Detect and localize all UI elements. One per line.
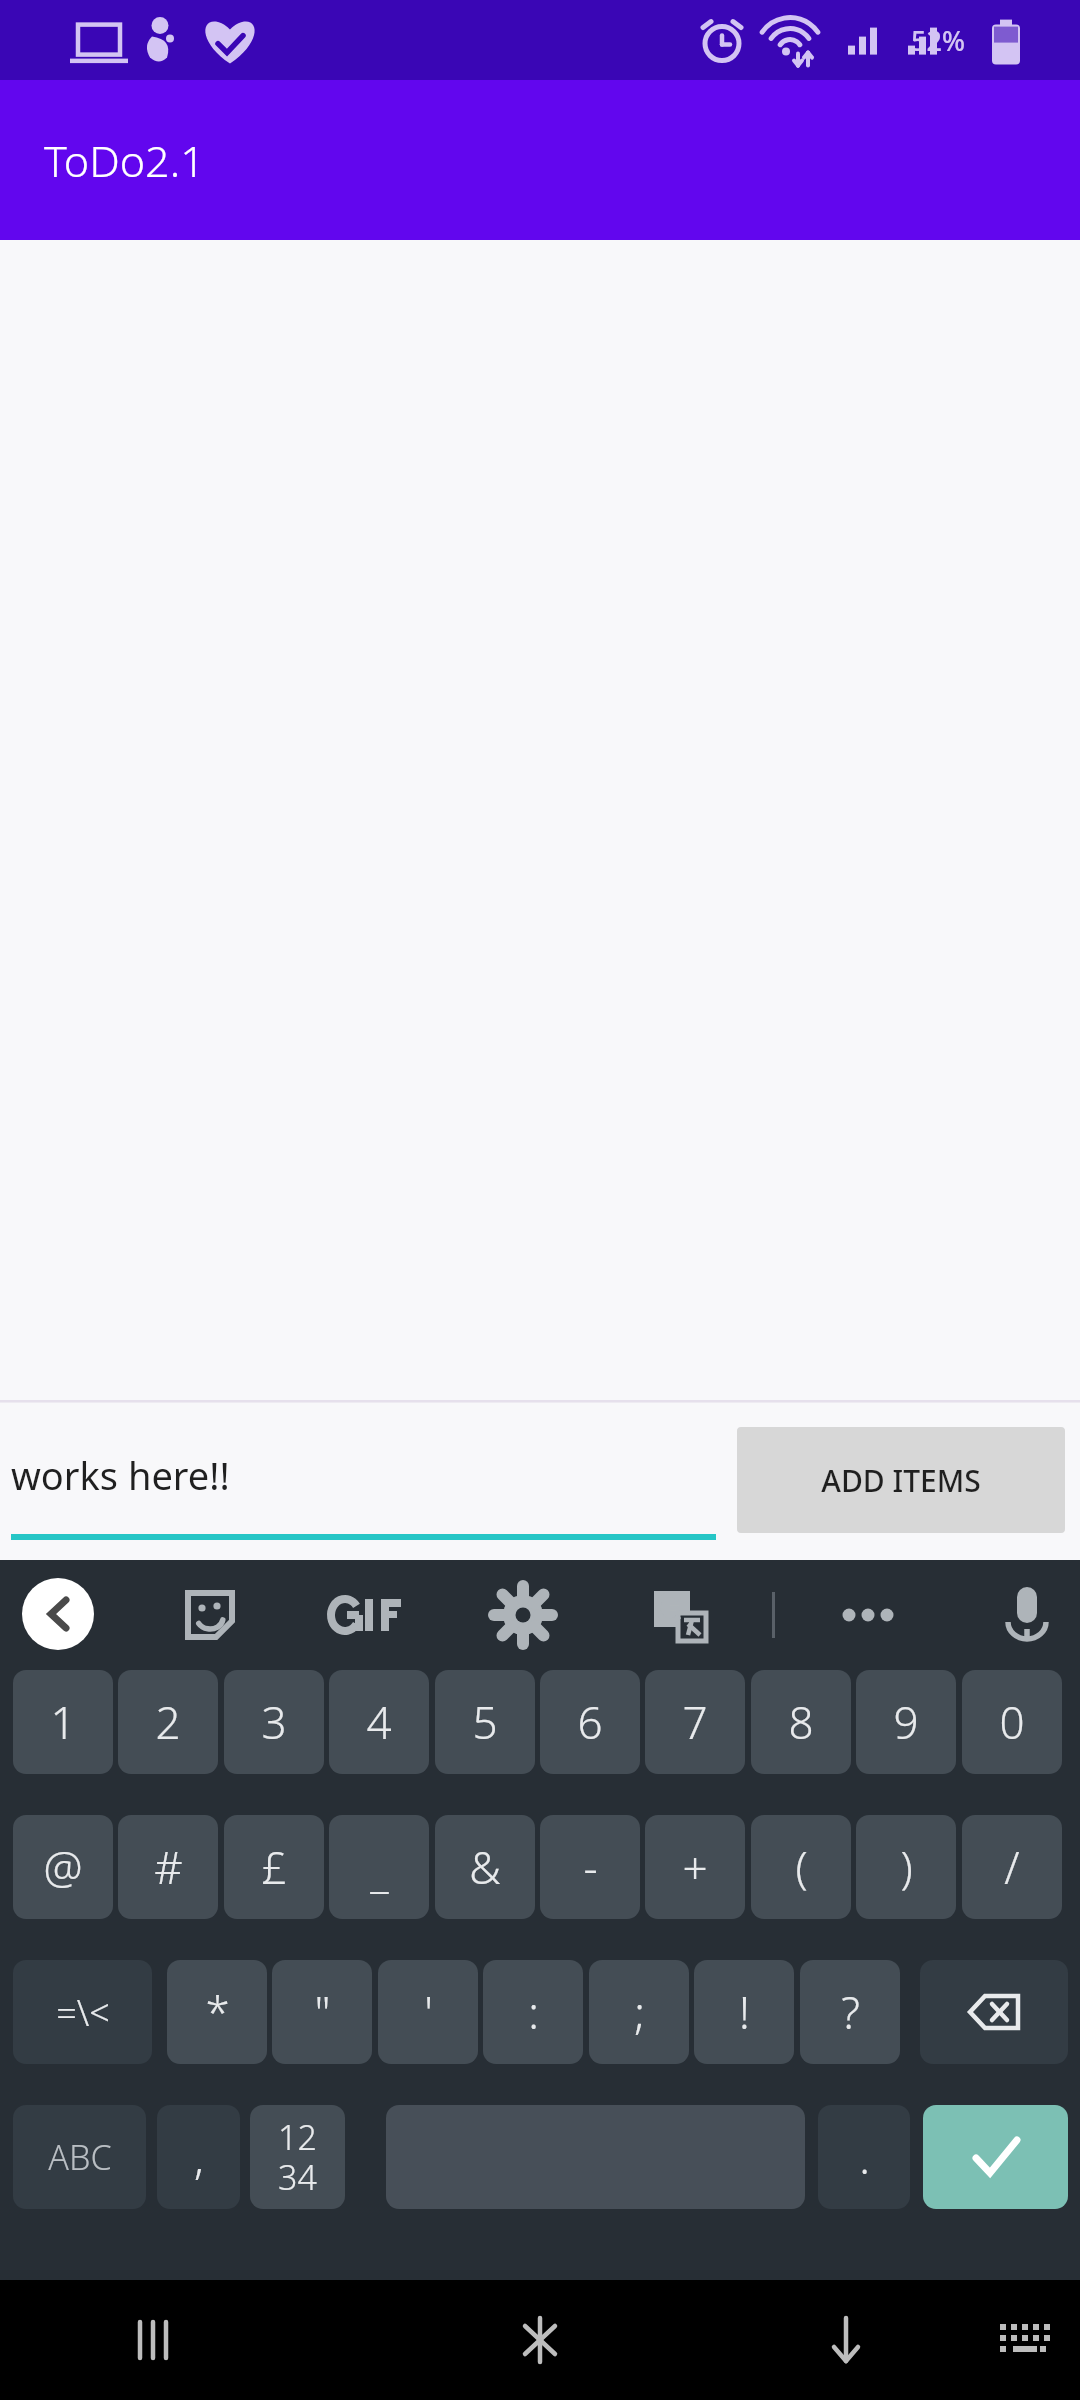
- staticText: (: [795, 1837, 808, 1897]
- staticText: :: [528, 1982, 539, 2042]
- button[interactable]: £: [224, 1815, 324, 1919]
- staticText: ,: [194, 2127, 204, 2187]
- staticText: *: [205, 1982, 230, 2042]
- button[interactable]: !: [694, 1960, 794, 2064]
- button[interactable]: Home: [490, 2280, 590, 2400]
- button[interactable]: _: [329, 1815, 429, 1919]
- staticText: 6: [577, 1692, 603, 1752]
- button[interactable]: Hide keyboard: [796, 2280, 896, 2400]
- button[interactable]: GIF: [319, 1571, 407, 1659]
- staticText: #: [154, 1837, 183, 1897]
- button[interactable]: works here!!: [11, 1410, 716, 1540]
- staticText: !: [739, 1982, 750, 2042]
- button[interactable]: +: [645, 1815, 745, 1919]
- button[interactable]: @: [13, 1815, 113, 1919]
- staticText: -: [583, 1837, 598, 1897]
- button[interactable]: ADD ITEMS: [737, 1427, 1065, 1533]
- button[interactable]: 5: [435, 1670, 535, 1774]
- button[interactable]: More options: [824, 1571, 912, 1659]
- button[interactable]: ,: [157, 2105, 240, 2209]
- staticText: 1: [50, 1692, 76, 1752]
- staticText: 7: [682, 1692, 708, 1752]
- button[interactable]: 3: [224, 1670, 324, 1774]
- button[interactable]: 1: [13, 1670, 113, 1774]
- staticText: +: [682, 1837, 708, 1897]
- staticText: 9: [893, 1692, 919, 1752]
- button[interactable]: Back: [22, 1578, 94, 1650]
- button[interactable]: ?: [800, 1960, 900, 2064]
- button[interactable]: ): [856, 1815, 956, 1919]
- button[interactable]: -: [540, 1815, 640, 1919]
- staticText: 0: [999, 1692, 1025, 1752]
- button[interactable]: :: [483, 1960, 583, 2064]
- staticText: .: [859, 2127, 870, 2187]
- staticText: _: [370, 1841, 389, 1901]
- button[interactable]: Recents: [103, 2280, 203, 2400]
- button[interactable]: ': [378, 1960, 478, 2064]
- button[interactable]: 6: [540, 1670, 640, 1774]
- button[interactable]: .: [818, 2105, 910, 2209]
- button[interactable]: &: [435, 1815, 535, 1919]
- button[interactable]: (: [751, 1815, 851, 1919]
- staticText: &: [469, 1837, 501, 1897]
- button[interactable]: Enter: [923, 2105, 1068, 2209]
- staticText: 2: [155, 1692, 181, 1752]
- staticText: ABC: [48, 2134, 112, 2180]
- button[interactable]: ABC: [13, 2105, 146, 2209]
- button[interactable]: 8: [751, 1670, 851, 1774]
- staticText: =\<: [56, 1988, 110, 2037]
- button[interactable]: 9: [856, 1670, 956, 1774]
- button[interactable]: Voice input: [983, 1571, 1071, 1659]
- button[interactable]: /: [962, 1815, 1062, 1919]
- button[interactable]: 0: [962, 1670, 1062, 1774]
- staticText: @: [43, 1837, 83, 1897]
- staticText: 5: [472, 1692, 498, 1752]
- staticText: ;: [634, 1982, 645, 2042]
- button[interactable]: *: [167, 1960, 267, 2064]
- button[interactable]: Settings: [479, 1571, 567, 1659]
- staticText: works here!!: [11, 1449, 230, 1501]
- button[interactable]: Backspace: [920, 1960, 1068, 2064]
- staticText: /: [1004, 1837, 1020, 1897]
- button[interactable]: Translate: [636, 1571, 724, 1659]
- staticText: £: [261, 1837, 287, 1897]
- staticText: ToDo2.1: [44, 131, 205, 190]
- button[interactable]: 12 34: [250, 2105, 345, 2209]
- button[interactable]: 7: [645, 1670, 745, 1774]
- staticText: ': [424, 1982, 433, 2042]
- staticText: ": [314, 1982, 331, 2042]
- button[interactable]: 2: [118, 1670, 218, 1774]
- staticText: 3: [261, 1692, 287, 1752]
- button[interactable]: ;: [589, 1960, 689, 2064]
- staticText: 4: [366, 1692, 392, 1752]
- button[interactable]: 4: [329, 1670, 429, 1774]
- staticText: 52%: [911, 22, 965, 59]
- button[interactable]: Change keyboard: [972, 2280, 1072, 2400]
- button[interactable]: =\<: [13, 1960, 152, 2064]
- staticText: 12 34: [278, 2114, 317, 2200]
- staticText: ?: [841, 1982, 860, 2042]
- staticText: 8: [788, 1692, 814, 1752]
- button[interactable]: Stickers: [166, 1571, 254, 1659]
- staticText: ADD ITEMS: [821, 1460, 981, 1501]
- staticText: ): [900, 1837, 913, 1897]
- button[interactable]: ": [272, 1960, 372, 2064]
- button[interactable]: #: [118, 1815, 218, 1919]
